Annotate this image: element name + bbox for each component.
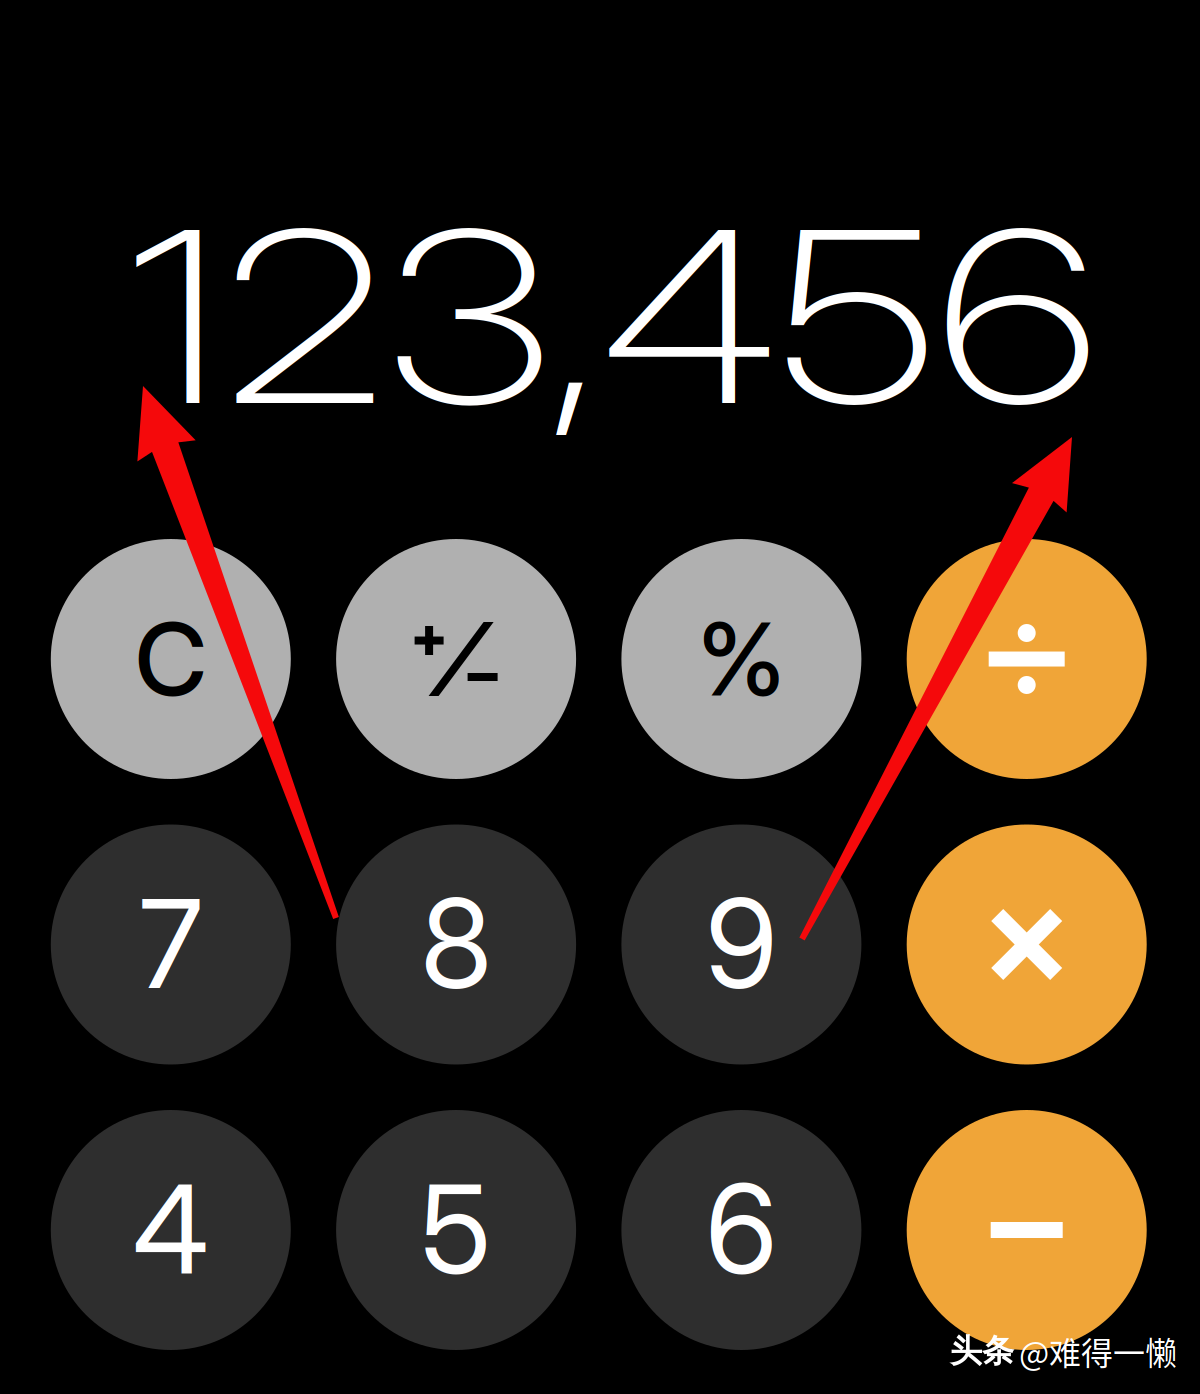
button[interactable]: 4 [51, 1110, 291, 1350]
staticText: 5 [421, 1155, 492, 1303]
staticText: % [697, 598, 785, 719]
staticText: C [135, 598, 207, 719]
button[interactable]: Divide [907, 539, 1147, 779]
button[interactable]: Multiply [907, 824, 1147, 1064]
staticText: 9 [705, 869, 777, 1018]
staticText: 头条 [950, 1331, 1014, 1371]
button[interactable]: 7 [51, 824, 291, 1064]
staticText: @难得一懒 [1019, 1328, 1177, 1374]
staticText: 7 [139, 869, 202, 1018]
button[interactable]: 5 [336, 1110, 576, 1350]
button[interactable]: C [51, 539, 291, 779]
button[interactable]: % [621, 539, 861, 779]
staticText: 4 [133, 1155, 209, 1303]
button[interactable]: 9 [621, 824, 861, 1064]
button[interactable]: Plus Minus [336, 539, 576, 779]
staticText: 123,456 [126, 173, 897, 460]
button[interactable]: 8 [336, 824, 576, 1064]
button[interactable]: 6 [621, 1110, 861, 1350]
staticText: 8 [421, 869, 492, 1018]
button[interactable]: Subtract [907, 1110, 1147, 1350]
staticText: 6 [705, 1155, 777, 1303]
